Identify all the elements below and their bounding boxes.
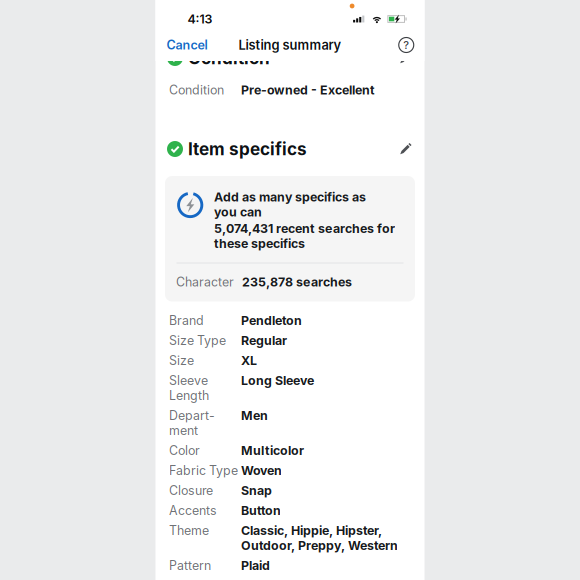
- staticText: Pattern: [169, 558, 211, 573]
- button[interactable]: Pattern: [155, 556, 424, 576]
- button[interactable]: Depart- ment: [155, 405, 424, 440]
- staticText: Brand: [169, 313, 204, 328]
- button[interactable]: Theme: [155, 520, 424, 555]
- staticText: Color: [169, 443, 200, 458]
- staticText: Classic, Hippie, Hipster, Outdoor, Prepp…: [241, 523, 398, 553]
- staticText: Men: [241, 408, 268, 423]
- button[interactable]: Closure: [155, 480, 424, 500]
- staticText: Character: [176, 274, 234, 289]
- staticText: Button: [241, 503, 281, 518]
- staticText: Size Type: [169, 333, 226, 348]
- staticText: Fabric Type: [169, 463, 238, 478]
- staticText: 5,074,431 recent searches for these spec…: [214, 221, 395, 251]
- button[interactable]: Color: [155, 440, 424, 460]
- staticText: ?: [403, 38, 409, 52]
- button[interactable]: Sleeve Length: [155, 370, 424, 405]
- button[interactable]: Size Type: [155, 330, 424, 350]
- staticText: Condition: [188, 48, 270, 68]
- button[interactable]: Condition: [155, 80, 424, 100]
- button[interactable]: Fabric Type: [155, 460, 424, 480]
- staticText: Condition: [169, 82, 224, 97]
- staticText: Multicolor: [241, 443, 304, 458]
- staticText: XL: [241, 353, 257, 368]
- staticText: Sleeve Length: [169, 373, 209, 403]
- staticText: 4:13: [187, 11, 212, 26]
- staticText: Pendleton: [241, 313, 302, 328]
- staticText: Listing summary: [238, 37, 341, 53]
- staticText: Theme: [169, 523, 209, 538]
- staticText: Add as many specifics as you can: [214, 189, 366, 219]
- staticText: Woven: [241, 463, 282, 478]
- staticText: Closure: [169, 483, 213, 498]
- staticText: Snap: [241, 483, 272, 498]
- staticText: 235,878 searches: [242, 274, 352, 289]
- button[interactable]: Edit Condition: [399, 51, 424, 64]
- staticText: Accents: [169, 503, 217, 518]
- button[interactable]: Edit Item specifics: [399, 142, 424, 155]
- staticText: Pre-owned - Excellent: [241, 82, 375, 97]
- staticText: Item specifics: [188, 139, 307, 159]
- staticText: Plaid: [241, 558, 270, 573]
- staticText: Depart- ment: [169, 408, 215, 438]
- staticText: Long Sleeve: [241, 373, 314, 388]
- staticText: Size: [169, 353, 194, 368]
- button[interactable]: Accents: [155, 500, 424, 520]
- button[interactable]: Cancel: [155, 31, 207, 59]
- button[interactable]: Help: [398, 37, 424, 53]
- staticText: Regular: [241, 333, 287, 348]
- button[interactable]: Size: [155, 350, 424, 370]
- button[interactable]: Brand: [155, 310, 424, 330]
- staticText: Cancel: [166, 37, 207, 53]
